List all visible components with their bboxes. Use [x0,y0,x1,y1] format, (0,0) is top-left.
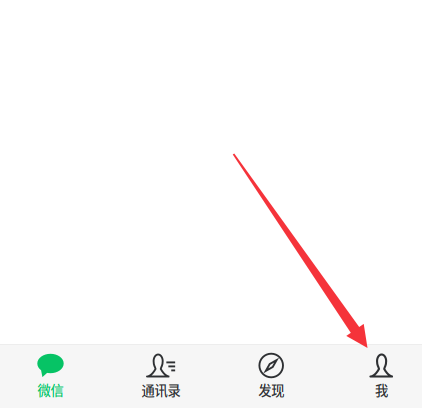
staticText: 发现 [258,380,284,399]
staticText: 微信 [37,380,63,399]
button[interactable]: 发现 [216,344,326,408]
staticText: 通讯录 [141,380,180,399]
button[interactable]: 我 [326,344,422,408]
button[interactable]: 通讯录 [106,344,216,408]
button[interactable]: 微信 [0,344,106,408]
staticText: 我 [375,380,388,399]
